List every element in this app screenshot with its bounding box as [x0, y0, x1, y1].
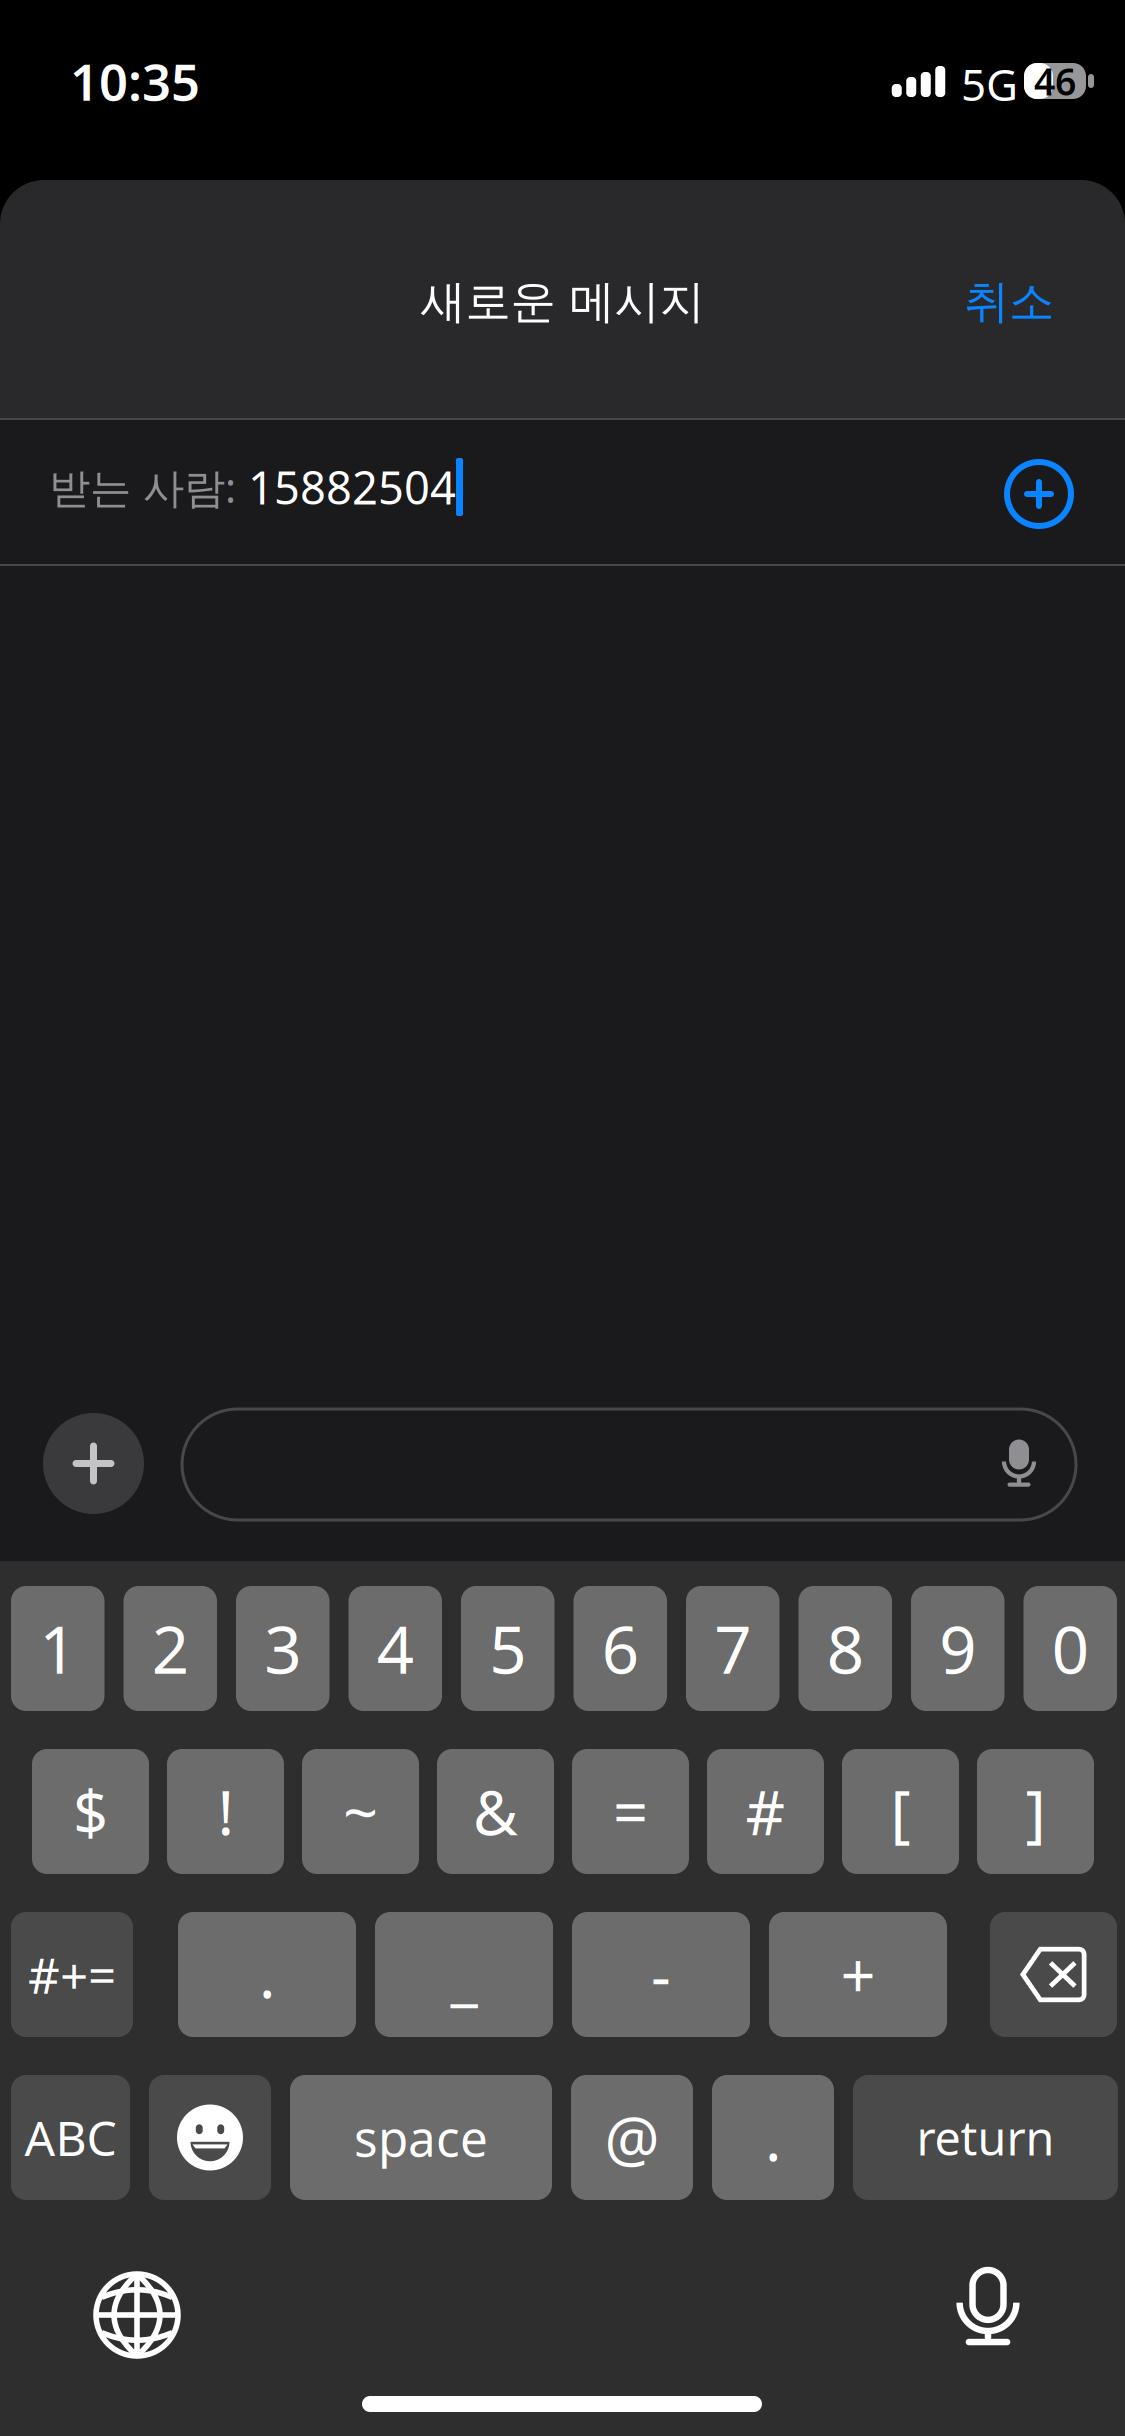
staticText: . [765, 2097, 781, 2178]
staticText: return [916, 2106, 1054, 2168]
button[interactable]: = [572, 1749, 689, 1874]
staticText: 5G [961, 55, 1018, 113]
button[interactable]: return [853, 2075, 1118, 2200]
staticText: 15882504 [248, 457, 456, 517]
button[interactable]: Delete [990, 1912, 1117, 2037]
staticText: 3 [264, 1605, 301, 1692]
button[interactable]: 취소 [924, 266, 1054, 338]
button[interactable]: _ [375, 1912, 553, 2037]
staticText: - [651, 1934, 671, 2015]
staticText: #+= [28, 1942, 116, 2007]
button[interactable]: 0 [1023, 1586, 1117, 1711]
button[interactable]: space [290, 2075, 552, 2200]
staticText: 8 [827, 1605, 864, 1692]
staticText: 6 [602, 1605, 639, 1692]
button[interactable]: 5 [461, 1586, 554, 1711]
button[interactable]: . [178, 1912, 356, 2037]
button[interactable]: Dictation [923, 2248, 1053, 2378]
staticText: 4 [377, 1605, 414, 1692]
button[interactable]: ] [977, 1749, 1094, 1874]
button[interactable]: & [437, 1749, 554, 1874]
staticText: + [840, 1934, 875, 2015]
button[interactable]: 1 [11, 1586, 104, 1711]
staticText: _ [450, 1934, 477, 2015]
button[interactable]: Add contact [989, 444, 1089, 544]
button[interactable]: # [707, 1749, 824, 1874]
staticText: space [354, 2105, 488, 2170]
button[interactable]: ! [167, 1749, 284, 1874]
staticText: ~ [343, 1771, 378, 1852]
button[interactable]: Next keyboard [77, 2255, 197, 2375]
button[interactable]: ABC [11, 2075, 130, 2200]
staticText: [ [890, 1771, 910, 1852]
button[interactable]: Add media [43, 1413, 144, 1514]
button[interactable]: 2 [123, 1586, 217, 1711]
staticText: # [745, 1771, 785, 1852]
staticText: 2 [152, 1605, 189, 1692]
button[interactable]: Emoji [149, 2075, 271, 2200]
button[interactable]: #+= [11, 1912, 133, 2037]
button[interactable]: [ [842, 1749, 959, 1874]
staticText: 7 [714, 1605, 751, 1692]
button[interactable]: 9 [911, 1586, 1004, 1711]
staticText: 46 [1034, 56, 1076, 106]
staticText: 취소 [964, 274, 1054, 330]
staticText: 5 [489, 1605, 526, 1692]
staticText: 9 [939, 1605, 976, 1692]
staticText: @ [604, 2097, 659, 2178]
staticText: 새로운 메시지 [420, 274, 704, 330]
button[interactable]: 7 [686, 1586, 779, 1711]
button[interactable]: 4 [348, 1586, 442, 1711]
staticText: 0 [1052, 1605, 1089, 1692]
button[interactable]: Message [182, 1409, 1076, 1520]
staticText: = [613, 1771, 648, 1852]
button[interactable]: + [769, 1912, 947, 2037]
button[interactable]: 6 [573, 1586, 667, 1711]
staticText: $ [73, 1771, 108, 1852]
staticText: & [473, 1771, 518, 1852]
staticText: . [259, 1934, 275, 2015]
staticText: ! [217, 1771, 233, 1852]
staticText: ABC [24, 2106, 116, 2169]
staticText: ] [1025, 1771, 1045, 1852]
button[interactable]: - [572, 1912, 750, 2037]
button[interactable]: @ [571, 2075, 693, 2200]
staticText: 10:35 [70, 47, 200, 115]
button[interactable]: 8 [798, 1586, 892, 1711]
button[interactable]: $ [32, 1749, 149, 1874]
staticText: 받는 사람: [49, 460, 236, 514]
button[interactable]: . [712, 2075, 834, 2200]
button[interactable]: ~ [302, 1749, 419, 1874]
staticText: 1 [39, 1605, 76, 1692]
button[interactable]: 3 [236, 1586, 329, 1711]
